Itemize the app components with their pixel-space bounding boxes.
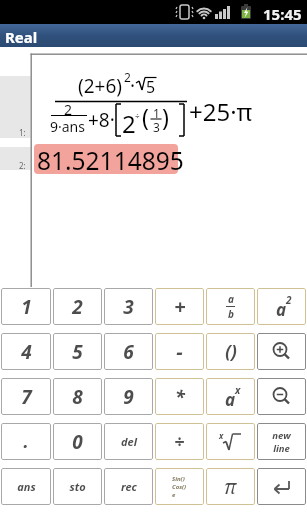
button[interactable]: . xyxy=(1,423,51,460)
staticText: π xyxy=(224,474,237,500)
staticText: * xyxy=(175,384,185,409)
staticText: sto xyxy=(69,479,86,494)
button[interactable]: 7 xyxy=(1,378,51,415)
staticText: 7 xyxy=(21,384,32,410)
staticText: 6 xyxy=(123,339,134,365)
staticText: 3 xyxy=(123,294,134,320)
button[interactable]: π xyxy=(206,468,255,505)
button[interactable]: a xyxy=(206,378,255,415)
staticText: 2 xyxy=(72,294,83,320)
staticText: (2+6) xyxy=(78,73,123,99)
button[interactable] xyxy=(257,468,306,505)
staticText: e xyxy=(172,491,176,499)
staticText: Cos() xyxy=(172,483,187,491)
staticText: - xyxy=(176,338,183,365)
button[interactable] xyxy=(257,378,306,415)
button[interactable]: del xyxy=(104,423,153,460)
button[interactable]: - xyxy=(155,333,204,370)
staticText: a xyxy=(276,298,287,321)
button[interactable]: x xyxy=(206,423,255,460)
button[interactable]: 8 xyxy=(53,378,102,415)
staticText: ÷ xyxy=(174,429,185,454)
staticText: · xyxy=(130,73,136,99)
staticText: +8· xyxy=(88,107,115,133)
button[interactable]: a xyxy=(206,288,255,325)
button[interactable]: 0 xyxy=(53,423,102,460)
button[interactable]: rec xyxy=(104,468,153,505)
button[interactable] xyxy=(257,333,306,370)
staticText: ans xyxy=(17,479,36,494)
staticText: Sin() xyxy=(172,475,185,483)
button[interactable]: 1 xyxy=(1,288,51,325)
staticText: new line xyxy=(272,429,291,455)
staticText: 0 xyxy=(72,429,83,455)
staticText: ( xyxy=(142,101,149,132)
staticText: 5 xyxy=(72,339,83,365)
button[interactable]: () xyxy=(206,333,255,370)
staticText: . xyxy=(23,429,29,454)
staticText: x xyxy=(235,383,241,397)
button[interactable]: a xyxy=(257,288,306,325)
button[interactable]: sto xyxy=(53,468,102,505)
staticText: del xyxy=(121,434,137,449)
button[interactable]: 9 xyxy=(104,378,153,415)
staticText: 15:45 xyxy=(263,4,302,24)
button[interactable]: ans xyxy=(1,468,51,505)
button[interactable]: Sin() xyxy=(155,468,204,505)
staticText: ÷ xyxy=(135,110,140,121)
staticText: 2: xyxy=(19,160,26,171)
button[interactable]: ÷ xyxy=(155,423,204,460)
staticText: 8 xyxy=(72,384,83,410)
staticText: Real xyxy=(5,27,38,47)
staticText: 2 xyxy=(286,293,292,307)
staticText: 5 xyxy=(146,76,156,98)
button[interactable]: 6 xyxy=(104,333,153,370)
staticText: 81.52114895 xyxy=(37,144,184,177)
button[interactable]: 3 xyxy=(104,288,153,325)
staticText: rec xyxy=(121,479,137,494)
staticText: a xyxy=(228,292,234,306)
staticText: a xyxy=(225,388,236,411)
button[interactable]: 2 xyxy=(53,288,102,325)
button[interactable]: + xyxy=(155,288,204,325)
staticText: 3 xyxy=(153,119,160,135)
staticText: 2 xyxy=(124,69,131,85)
staticText: 9·ans xyxy=(50,117,85,136)
staticText: 1 xyxy=(153,105,160,121)
button[interactable]: 4 xyxy=(1,333,51,370)
staticText: ) xyxy=(162,101,169,132)
staticText: + xyxy=(174,293,186,320)
button[interactable]: * xyxy=(155,378,204,415)
staticText: 1 xyxy=(21,294,32,320)
staticText: b xyxy=(228,307,234,321)
staticText: 4 xyxy=(21,339,32,365)
staticText: 1: xyxy=(19,127,26,138)
staticText: +25·π xyxy=(189,95,253,128)
staticText: 2 xyxy=(122,107,136,140)
button[interactable]: new line xyxy=(257,423,306,460)
staticText: 2 xyxy=(64,100,73,119)
staticText: x xyxy=(219,430,224,441)
staticText: () xyxy=(225,340,237,363)
button[interactable]: 5 xyxy=(53,333,102,370)
staticText: 9 xyxy=(123,384,134,410)
